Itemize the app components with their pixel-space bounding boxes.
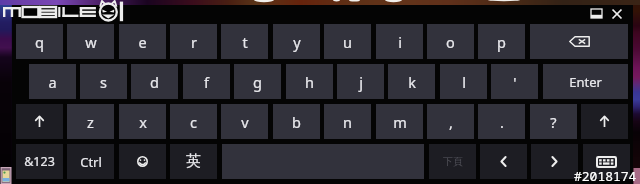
staticText: x <box>139 112 147 132</box>
button[interactable]: &123 <box>16 144 63 179</box>
button[interactable]: p <box>478 24 525 59</box>
button[interactable]: u <box>324 24 371 59</box>
staticText: l <box>462 72 466 92</box>
staticText: q <box>35 32 44 52</box>
staticText: f <box>204 72 209 92</box>
button[interactable]: . <box>478 104 525 139</box>
button[interactable]: s <box>80 64 127 99</box>
button[interactable]: e <box>119 24 166 59</box>
staticText: n <box>343 112 352 132</box>
button[interactable]: h <box>286 64 333 99</box>
button[interactable]: Shift <box>581 104 628 139</box>
button[interactable]: Close <box>602 6 632 21</box>
button[interactable]: Backspace <box>530 24 628 59</box>
button[interactable]: v <box>221 104 268 139</box>
button[interactable]: m <box>376 104 423 139</box>
staticText: b <box>292 112 301 132</box>
staticText: 英 <box>186 152 201 171</box>
staticText: s <box>100 72 107 92</box>
staticText: h <box>305 72 314 92</box>
button[interactable]: 英 <box>170 144 217 179</box>
button[interactable]: i <box>376 24 423 59</box>
button[interactable]: w <box>67 24 114 59</box>
staticText: ' <box>513 72 517 92</box>
staticText: #2018174 <box>574 167 637 184</box>
staticText: j <box>359 72 363 92</box>
button[interactable]: Hide keyboard <box>583 144 630 179</box>
button[interactable]: o <box>427 24 474 59</box>
staticText: &123 <box>24 153 55 170</box>
button[interactable]: ? <box>530 104 577 139</box>
staticText: Ctrl <box>80 153 102 171</box>
staticText: r <box>191 32 197 52</box>
button[interactable]: x <box>119 104 166 139</box>
staticText: . <box>500 112 504 132</box>
staticText: , <box>449 112 453 132</box>
button[interactable]: t <box>221 24 268 59</box>
staticText: w <box>85 32 97 52</box>
staticText: a <box>48 72 57 92</box>
button[interactable]: n <box>324 104 371 139</box>
button[interactable]: r <box>170 24 217 59</box>
staticText: m <box>393 112 407 132</box>
staticText: p <box>497 32 506 52</box>
staticText: i <box>398 32 402 52</box>
staticText: e <box>138 32 147 52</box>
staticText: y <box>293 32 301 52</box>
button[interactable]: c <box>170 104 217 139</box>
button[interactable]: g <box>234 64 281 99</box>
staticText: c <box>190 112 197 132</box>
button[interactable]: Previous <box>480 144 527 179</box>
button[interactable]: Ctrl <box>67 144 114 179</box>
button[interactable]: a <box>29 64 76 99</box>
button[interactable]: b <box>273 104 320 139</box>
button[interactable]: j <box>337 64 384 99</box>
button[interactable]: q <box>16 24 63 59</box>
button[interactable]: Next <box>531 144 578 179</box>
staticText: k <box>408 72 416 92</box>
button[interactable]: k <box>388 64 435 99</box>
button[interactable]: d <box>131 64 178 99</box>
staticText: g <box>253 72 262 92</box>
button[interactable]: z <box>67 104 114 139</box>
button[interactable]: Minimize <box>578 6 614 21</box>
button[interactable]: l <box>440 64 487 99</box>
button[interactable]: , <box>427 104 474 139</box>
button[interactable]: ' <box>491 64 538 99</box>
button[interactable]: y <box>273 24 320 59</box>
button[interactable]: Enter <box>543 64 628 99</box>
staticText: 下頁 <box>443 155 463 168</box>
staticText: o <box>446 32 455 52</box>
button[interactable]: f <box>183 64 230 99</box>
staticText: u <box>343 32 352 52</box>
button[interactable]: Emoji <box>119 144 166 179</box>
button[interactable]: Shift <box>16 104 63 139</box>
button[interactable]: 下頁 <box>429 144 476 179</box>
staticText: ? <box>550 112 557 132</box>
staticText: t <box>242 32 248 52</box>
staticText: z <box>87 112 94 132</box>
staticText: v <box>241 112 249 132</box>
staticText: Enter <box>569 73 602 91</box>
staticText: d <box>150 72 159 92</box>
